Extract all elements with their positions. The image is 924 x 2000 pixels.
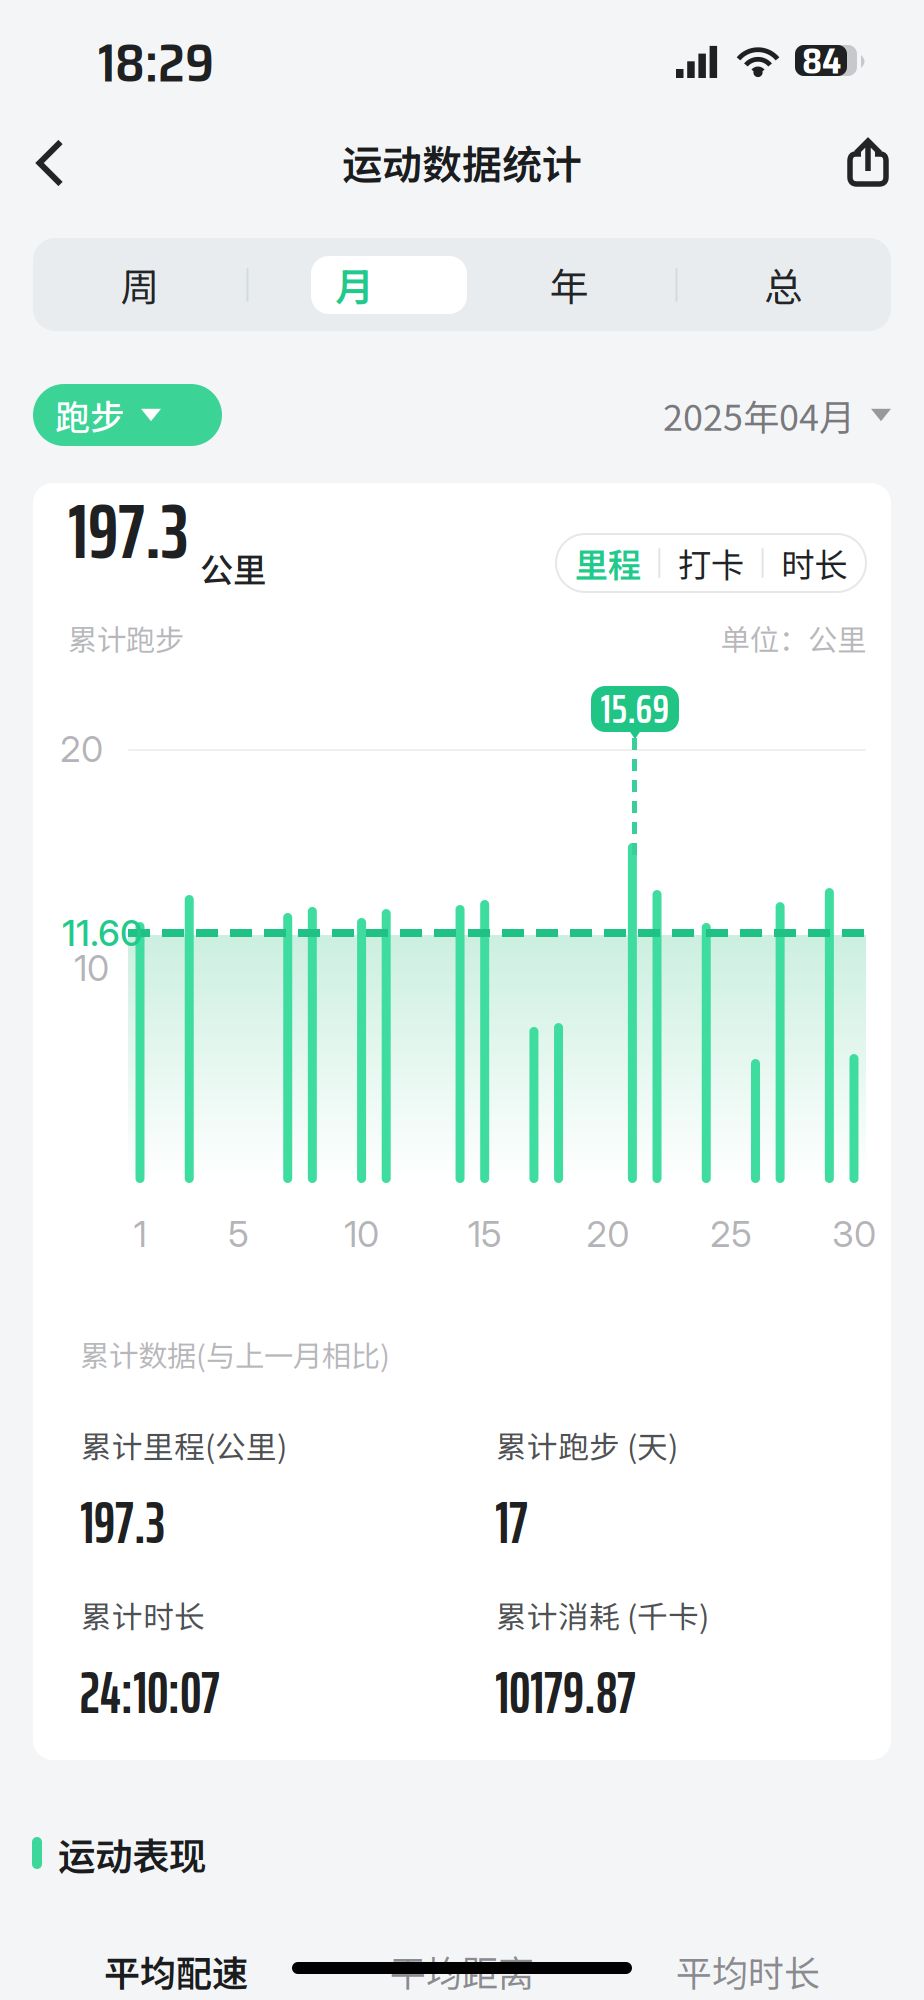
button[interactable]: 时长 [556, 534, 659, 592]
staticText: 累计跑步 [68, 617, 184, 659]
staticText: 25 [710, 1212, 752, 1256]
staticText: 累计时长 [81, 1593, 205, 1637]
staticText: 10 [74, 946, 109, 990]
staticText: 17 [495, 1475, 528, 1569]
button[interactable]: 平均配速 [0, 0, 286, 50]
staticText: 运动表现 [58, 1827, 206, 1881]
staticText: 84 [802, 33, 841, 89]
staticText: 运动数据统计 [342, 133, 582, 191]
staticText: 5 [228, 1212, 249, 1256]
staticText: 时长 [781, 539, 847, 587]
staticText: 月 [335, 256, 374, 312]
staticText: 2025年04月 [663, 389, 855, 441]
staticText: 里程 [575, 539, 641, 587]
staticText: 累计里程(公里) [81, 1423, 287, 1467]
button[interactable]: 跑步 [33, 384, 222, 446]
staticText: 11.60 [62, 911, 143, 955]
staticText: 30 [832, 1212, 876, 1256]
button[interactable]: 平均时长 [0, 0, 286, 50]
staticText: 跑步 [55, 390, 125, 440]
button[interactable]: 2025年04月 [629, 384, 891, 446]
staticText: 打卡 [678, 539, 744, 587]
button[interactable]: 周 [33, 238, 247, 331]
button[interactable]: 打卡 [556, 534, 659, 592]
staticText: 197.3 [68, 470, 188, 592]
button[interactable]: 月 [33, 238, 247, 331]
staticText: 平均时长 [676, 1945, 820, 1997]
button[interactable]: 总 [33, 238, 247, 331]
staticText: 平均配速 [104, 1945, 248, 1997]
staticText: 公里 [200, 544, 266, 592]
staticText: 10179.87 [495, 1645, 636, 1739]
button[interactable]: Back [2, 115, 98, 211]
button[interactable]: 里程 [556, 534, 659, 592]
staticText: 20 [586, 1212, 629, 1256]
staticText: 10 [344, 1212, 379, 1256]
staticText: 1 [133, 1212, 146, 1256]
staticText: 周 [121, 256, 160, 312]
staticText: 18:29 [98, 21, 214, 105]
button[interactable]: Share [820, 115, 916, 211]
staticText: 总 [764, 256, 803, 312]
staticText: 24:10:07 [80, 1645, 220, 1739]
staticText: 20 [60, 727, 103, 771]
button[interactable]: 年 [33, 238, 247, 331]
staticText: 15.69 [600, 677, 669, 740]
staticText: 累计数据(与上一月相比) [80, 1333, 390, 1375]
staticText: 15 [468, 1212, 502, 1256]
staticText: 平均距离 [390, 1945, 534, 1997]
staticText: 197.3 [80, 1475, 165, 1569]
button[interactable]: 平均距离 [0, 0, 286, 50]
staticText: 累计跑步 (天) [496, 1423, 678, 1467]
staticText: 年 [550, 256, 589, 312]
staticText: 累计消耗 (千卡) [496, 1593, 709, 1637]
staticText: 单位：公里 [721, 617, 866, 659]
